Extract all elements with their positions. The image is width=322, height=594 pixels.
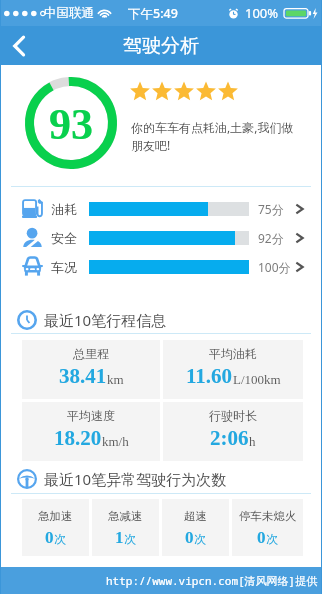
- staticText: 急加速: [38, 509, 73, 523]
- button[interactable]: 总里程: [22, 340, 160, 399]
- staticText: 你的车车有点耗油,土豪,我们做朋友吧!: [131, 119, 301, 154]
- staticText: 超速: [184, 509, 207, 523]
- staticText: 最近10笔行程信息: [44, 310, 167, 330]
- button[interactable]: 平均速度: [22, 402, 160, 461]
- button[interactable]: 急加速: [22, 499, 89, 556]
- button[interactable]: 停车未熄火: [232, 499, 303, 556]
- staticText: 100分: [258, 259, 291, 275]
- staticText: 次: [266, 531, 278, 546]
- staticText: 车况: [51, 259, 77, 275]
- staticText: 中国联通: [44, 5, 94, 21]
- staticText: http://www.vipcn.com[清风网络]提供: [106, 573, 318, 588]
- button[interactable]: 安全: [0, 223, 322, 252]
- button[interactable]: 行驶时长: [163, 402, 303, 461]
- staticText: 下午5:49: [128, 5, 178, 22]
- staticText: 次: [54, 531, 66, 546]
- button[interactable]: Back: [2, 26, 36, 65]
- staticText: km/h: [102, 434, 129, 448]
- staticText: 次: [194, 531, 206, 546]
- staticText: 75分: [258, 201, 284, 217]
- staticText: 92分: [258, 230, 284, 246]
- staticText: 0: [45, 528, 54, 547]
- staticText: km: [107, 372, 124, 386]
- staticText: 100%: [245, 4, 279, 22]
- staticText: 停车未熄火: [239, 509, 297, 523]
- staticText: 急减速: [108, 509, 143, 523]
- staticText: 1: [115, 528, 124, 547]
- staticText: 2:06: [210, 426, 249, 449]
- staticText: 93: [49, 100, 93, 149]
- staticText: 安全: [51, 230, 77, 246]
- button[interactable]: 车况: [0, 252, 322, 281]
- staticText: 0: [185, 528, 194, 547]
- staticText: 次: [124, 531, 136, 546]
- staticText: 总里程: [73, 346, 109, 361]
- staticText: 11.60: [186, 364, 233, 387]
- staticText: 0: [257, 528, 266, 547]
- staticText: 38.41: [59, 364, 107, 387]
- staticText: 平均油耗: [209, 346, 257, 361]
- staticText: h: [249, 434, 256, 448]
- staticText: 行驶时长: [209, 408, 257, 423]
- button[interactable]: 超速: [162, 499, 229, 556]
- staticText: 平均速度: [67, 408, 115, 423]
- staticText: 油耗: [51, 201, 77, 217]
- staticText: 18.20: [54, 426, 102, 449]
- button[interactable]: 平均油耗: [163, 340, 303, 399]
- button[interactable]: 急减速: [92, 499, 159, 556]
- staticText: 驾驶分析: [0, 34, 322, 65]
- staticText: 最近10笔异常驾驶行为次数: [44, 469, 227, 489]
- staticText: L/100km: [233, 372, 281, 386]
- button[interactable]: 油耗: [0, 194, 322, 223]
